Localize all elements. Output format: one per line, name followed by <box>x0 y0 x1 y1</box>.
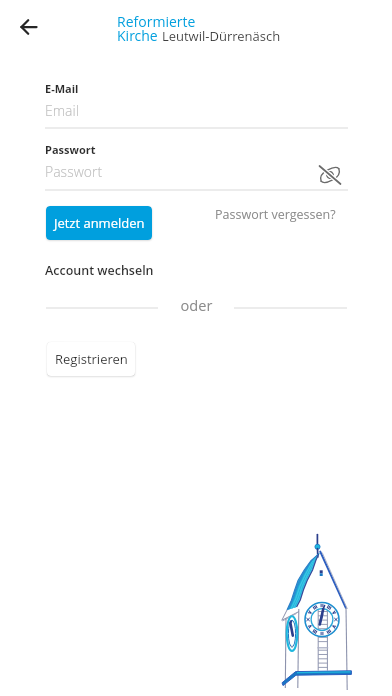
staticText: Reformierte <box>117 12 196 31</box>
staticText: oder <box>166 295 227 315</box>
button[interactable]: Registrieren <box>47 342 135 376</box>
staticText: Passwort <box>45 142 96 157</box>
button[interactable]: Account wechseln <box>45 259 154 282</box>
button[interactable]: Zurück <box>9 7 49 47</box>
staticText: Passwort <box>45 162 103 181</box>
button[interactable]: Passwort anzeigen <box>315 160 345 190</box>
button[interactable]: Jetzt anmelden <box>46 206 152 240</box>
button[interactable]: Passwort vergessen? <box>209 202 342 227</box>
staticText: Account wechseln <box>45 262 154 279</box>
staticText: Jetzt anmelden <box>54 214 145 232</box>
staticText: Registrieren <box>55 350 128 368</box>
staticText: Kirche <box>117 26 162 45</box>
staticText: E-Mail <box>45 81 79 96</box>
staticText: Email <box>45 101 79 120</box>
staticText: Passwort vergessen? <box>215 206 336 223</box>
staticText: Leutwil-Dürrenäsch <box>162 27 281 45</box>
